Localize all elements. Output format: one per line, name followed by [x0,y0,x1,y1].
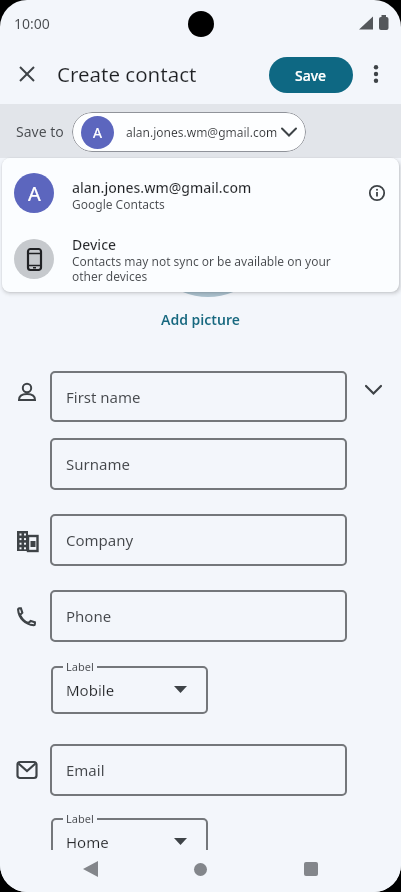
staticText: Label [66,659,94,674]
staticText: Google Contacts [72,196,165,212]
staticText: Device [72,235,117,254]
button[interactable] [13,60,41,88]
button[interactable]: Add picture [161,310,240,329]
staticText: Mobile [66,680,115,700]
button[interactable]: Phone [50,590,347,642]
button[interactable] [363,179,391,207]
button[interactable]: Surname [50,438,347,490]
staticText: 10:00 [14,14,50,33]
staticText: A [28,180,41,207]
staticText: Company [66,530,134,550]
staticText: Save [295,66,327,85]
button[interactable]: Home [51,818,208,866]
staticText: First name [66,387,141,407]
button[interactable]: Email [50,744,347,796]
staticText: Email [66,760,105,780]
staticText: Contacts may not sync or be available on… [72,253,331,285]
button[interactable] [362,60,390,88]
staticText: Label [66,811,94,826]
staticText: Create contact [57,60,197,88]
button[interactable]: Company [50,514,347,566]
button[interactable] [60,846,120,892]
staticText: alan.jones.wm@gmail.com [72,178,252,197]
staticText: Phone [66,606,112,626]
button[interactable] [281,846,341,892]
staticText: Add picture [161,310,240,329]
button[interactable] [170,846,230,892]
button[interactable]: A [72,112,306,152]
button[interactable] [2,230,399,292]
staticText: Save to [16,122,64,141]
staticText: alan.jones.wm@gmail.com [126,124,278,140]
staticText: A [93,123,102,142]
button[interactable]: First name [50,371,347,422]
button[interactable] [2,166,399,228]
button[interactable]: Mobile [51,666,208,714]
staticText: Home [66,832,109,852]
staticText: Surname [66,454,130,474]
button[interactable]: Save [269,57,353,93]
